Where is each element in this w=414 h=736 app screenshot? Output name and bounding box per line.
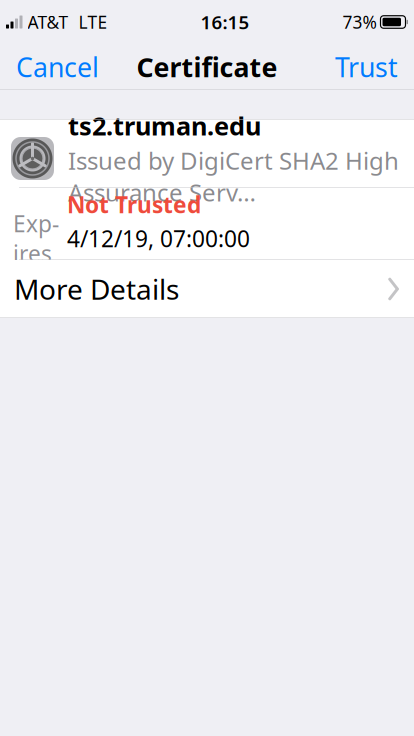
staticText: Certificate — [136, 49, 277, 85]
staticText: 73% — [342, 10, 376, 33]
button[interactable]: Cancel — [0, 43, 115, 91]
staticText: AT&T — [27, 10, 68, 33]
staticText: 16:15 — [200, 10, 249, 34]
staticText: Cancel — [16, 49, 99, 85]
staticText: ts2.truman.edu — [68, 109, 261, 142]
staticText: Trust — [335, 49, 398, 85]
staticText: More Details — [14, 270, 179, 308]
button[interactable]: Trust — [319, 43, 414, 91]
staticText: Issued by DigiCert SHA2 High Assurance S… — [68, 144, 399, 208]
button[interactable]: More Details — [0, 260, 414, 318]
staticText: Expires — [13, 208, 59, 269]
staticText: Not Trusted — [67, 189, 201, 219]
staticText: LTE — [78, 10, 107, 33]
staticText: 4/12/19, 07:00:00 — [67, 223, 250, 253]
